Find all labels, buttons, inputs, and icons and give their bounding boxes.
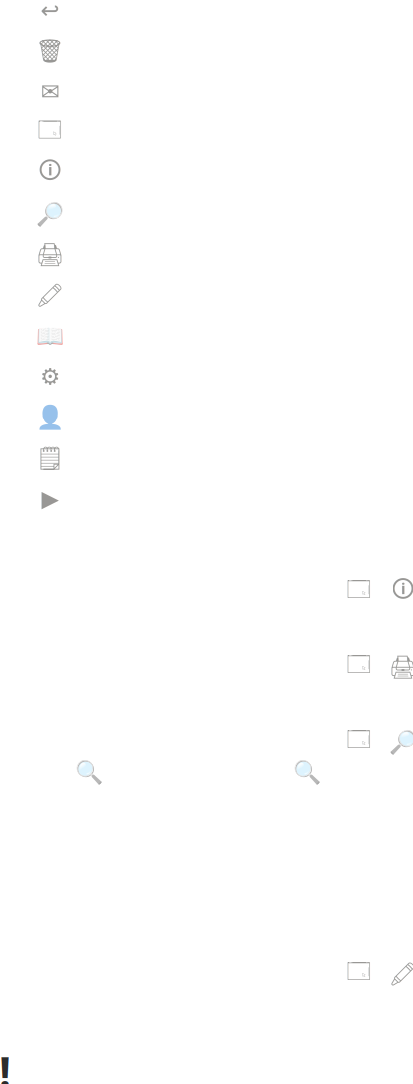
- button[interactable]: Window: [38, 112, 412, 153]
- staticText: 📖: [36, 323, 64, 349]
- staticText: 🖨: [388, 654, 413, 680]
- button[interactable]: Undo: [38, 0, 412, 31]
- button[interactable]: Find: [38, 193, 412, 234]
- button[interactable]: Edit: [38, 275, 412, 316]
- staticText: 🗒: [35, 445, 64, 471]
- staticText: 🗔: [37, 114, 62, 151]
- button[interactable]: Print: [38, 234, 412, 275]
- staticText: 🗔: [346, 648, 371, 686]
- staticText: 🛈: [391, 573, 413, 611]
- staticText: 🖍: [35, 282, 64, 308]
- staticText: ✉: [40, 79, 59, 105]
- button[interactable]: Delete: [38, 31, 412, 71]
- staticText: 🔎: [389, 729, 413, 755]
- staticText: 🗔: [346, 723, 371, 761]
- staticText: 🗔: [346, 573, 371, 611]
- button[interactable]: Info: [38, 153, 412, 193]
- button[interactable]: Play: [38, 478, 412, 519]
- staticText: ⚙: [40, 364, 60, 389]
- staticText: 🖨: [35, 242, 64, 267]
- button[interactable]: Notes: [38, 438, 412, 478]
- button[interactable]: Zoom In: [75, 742, 171, 802]
- staticText: 🔎: [36, 201, 64, 227]
- staticText: 🗔: [346, 955, 371, 993]
- staticText: ↩: [40, 0, 59, 23]
- button[interactable]: Print: [38, 643, 412, 691]
- button[interactable]: Read: [38, 316, 412, 356]
- staticText: 🔍: [75, 759, 103, 785]
- staticText: !: [0, 1043, 11, 1084]
- button[interactable]: Show Info: [38, 568, 412, 616]
- staticText: 🛈: [38, 154, 61, 192]
- button[interactable]: Mail: [38, 71, 412, 112]
- button[interactable]: Edit: [38, 950, 412, 998]
- staticText: 👤: [36, 404, 64, 430]
- staticText: 🖍: [388, 961, 413, 987]
- button[interactable]: Settings: [38, 356, 412, 397]
- staticText: 🔍: [293, 759, 321, 785]
- staticText: ▶: [41, 486, 58, 512]
- button[interactable]: Account: [38, 397, 412, 438]
- staticText: Zoom Out: [321, 742, 389, 802]
- button[interactable]: Zoom Out: [293, 742, 389, 802]
- staticText: 🗑: [35, 38, 64, 64]
- button[interactable]: Find: [38, 718, 412, 766]
